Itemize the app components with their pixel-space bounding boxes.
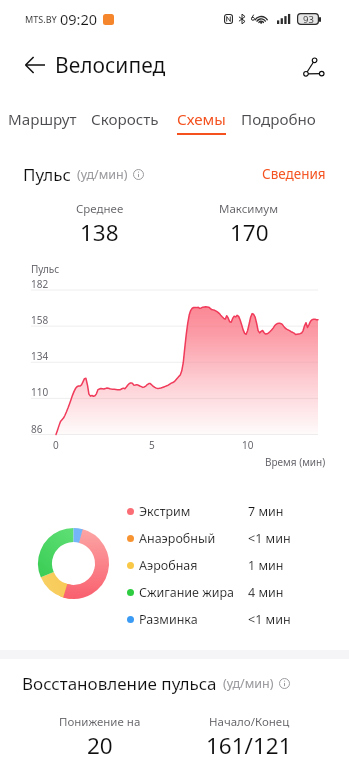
staticText: (уд/мин) [223,675,274,692]
staticText: Понижение на [59,714,141,730]
staticText: Аэробная [139,557,198,574]
staticText: Экстрим [139,503,191,520]
button[interactable]: Разминка [125,606,325,633]
staticText: <1 мин [248,611,291,628]
button[interactable]: Сведения [262,165,326,183]
staticText: (уд/мин) [77,166,128,183]
button[interactable]: Анаэробный [125,525,325,552]
button[interactable]: Back [15,45,55,85]
staticText: 7 мин [248,503,284,520]
button[interactable]: Сжигание жира [125,579,325,606]
button[interactable]: Скорость [83,104,167,138]
staticText: Пульс [23,163,71,186]
staticText: 1 мин [248,557,284,574]
staticText: 0 [53,438,59,452]
staticText: Схемы [177,109,226,130]
staticText: Максимум [219,201,279,217]
button[interactable]: Подробно [233,104,324,138]
staticText: 161/121 [206,730,292,761]
staticText: 4 мин [248,584,284,601]
staticText: MTS.BY [25,13,57,25]
staticText: Начало/Конец [209,714,290,730]
button[interactable]: Экстрим [125,498,325,525]
staticText: Анаэробный [139,530,216,547]
staticText: Разминка [139,611,198,628]
button[interactable]: Маршрут [0,104,85,138]
staticText: Велосипед [55,51,166,80]
button[interactable]: Схемы [169,104,234,138]
staticText: Сжигание жира [139,584,235,601]
staticText: Маршрут [8,109,77,130]
staticText: 182 [31,277,49,291]
button[interactable]: Share [298,45,338,85]
staticText: Среднее [76,201,124,217]
staticText: Восстановление пульса [22,672,217,695]
staticText: 93 [303,13,314,25]
staticText: Скорость [91,109,159,130]
staticText: 138 [80,217,119,248]
staticText: 09:20 [60,9,98,29]
staticText: 20 [87,730,113,761]
staticText: <1 мин [248,530,291,547]
button[interactable]: Аэробная [125,552,325,579]
staticText: Подробно [241,109,316,130]
staticText: Сведения [262,165,326,183]
staticText: 170 [230,217,269,248]
staticText: 86 [31,422,43,436]
staticText: 10 [242,438,254,452]
staticText: Время (мин) [265,455,326,469]
staticText: 5 [149,438,155,452]
staticText: Пульс [31,262,60,276]
staticText: 134 [31,349,49,363]
staticText: 158 [31,313,49,327]
staticText: 110 [31,385,49,399]
